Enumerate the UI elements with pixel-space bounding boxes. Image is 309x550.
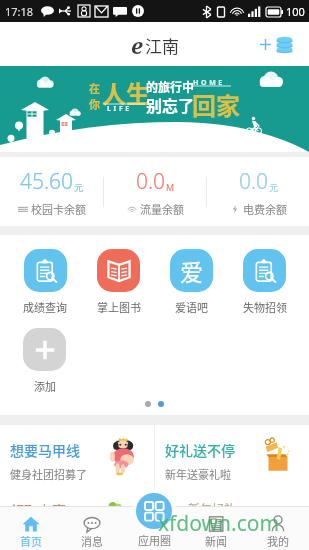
- button[interactable]: 首页: [0, 506, 61, 550]
- staticText: 爱语吧: [175, 299, 208, 315]
- button[interactable]: 消息: [61, 506, 123, 550]
- staticText: 首页: [20, 533, 42, 549]
- staticText: 在: [89, 80, 100, 96]
- button[interactable]: Add card: [252, 28, 309, 60]
- staticText: 想要马甲线: [10, 440, 80, 460]
- staticText: 成绩查询: [23, 299, 67, 315]
- staticText: 元: [74, 182, 83, 193]
- button[interactable]: 45.60: [0, 167, 103, 217]
- button[interactable]: 新闻: [185, 506, 247, 550]
- button[interactable]: 领取专享: [0, 497, 309, 506]
- staticText: 电费余额: [243, 201, 287, 217]
- staticText: 好礼送不停: [165, 440, 235, 460]
- staticText: 100: [286, 4, 305, 19]
- staticText: 0.0: [136, 167, 166, 196]
- staticText: 人生: [102, 75, 150, 110]
- button[interactable]: 0.0: [104, 167, 206, 217]
- button[interactable]: 添加: [8, 328, 81, 394]
- staticText: 我的: [267, 533, 289, 549]
- staticText: e: [131, 30, 143, 60]
- staticText: 领取专享: [10, 500, 66, 509]
- staticText: 消息: [81, 533, 103, 549]
- staticText: 失物招领: [243, 299, 287, 315]
- staticText: 45.60: [20, 167, 74, 196]
- staticText: H O M E: [193, 78, 223, 88]
- staticText: 校园卡余额: [31, 201, 86, 217]
- button[interactable]: 掌上图书: [82, 249, 155, 315]
- staticText: 的旅行中: [146, 78, 195, 95]
- staticText: 健身社团招募了: [10, 466, 87, 482]
- button[interactable]: 我的: [247, 506, 309, 550]
- staticText: 新闻: [205, 533, 227, 549]
- button[interactable]: 成绩查询: [8, 249, 82, 315]
- staticText: 新年好礼: [188, 500, 237, 509]
- staticText: xfdown.com: [158, 509, 280, 538]
- button[interactable]: 0.0: [207, 167, 309, 217]
- staticText: 江南: [145, 33, 179, 58]
- staticText: 掌上图书: [97, 299, 141, 315]
- button[interactable]: 想要马甲线: [0, 425, 154, 497]
- staticText: M: [166, 181, 175, 193]
- staticText: 应用圈: [138, 532, 171, 548]
- staticText: 元: [269, 182, 278, 193]
- staticText: 回家: [192, 87, 240, 122]
- staticText: 17:18: [5, 4, 34, 19]
- staticText: 0.0: [239, 167, 269, 196]
- staticText: L I F E: [107, 104, 130, 114]
- button[interactable]: 失物招领: [228, 249, 301, 315]
- staticText: 新年送豪礼啦: [165, 466, 231, 482]
- staticText: 添加: [34, 378, 56, 394]
- staticText: 别忘了: [146, 93, 195, 116]
- button[interactable]: 应用圈: [123, 506, 185, 550]
- staticText: 你: [89, 96, 100, 112]
- staticText: 流量余额: [140, 201, 184, 217]
- button[interactable]: 爱: [155, 249, 228, 315]
- button[interactable]: 好礼送不停: [155, 425, 309, 497]
- staticText: 爱: [180, 254, 203, 287]
